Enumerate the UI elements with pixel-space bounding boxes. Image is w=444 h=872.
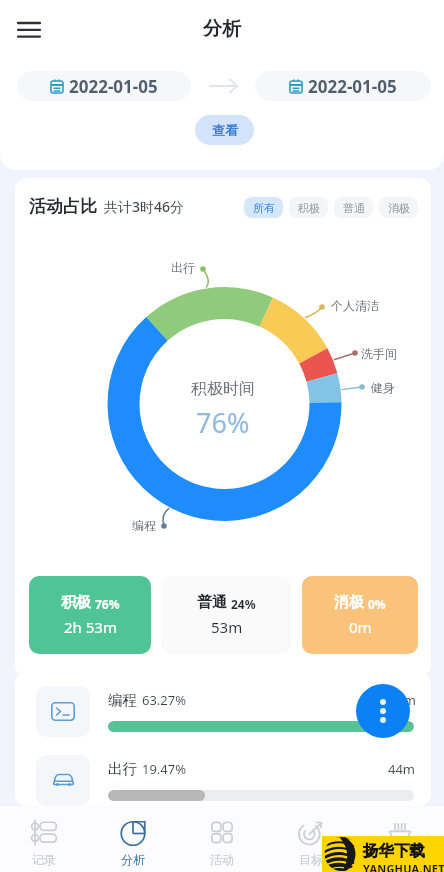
button[interactable]: 分析 — [88, 806, 177, 872]
button[interactable]: 目标 — [266, 806, 355, 872]
staticText: 目标 — [299, 852, 323, 867]
staticText: 24% — [231, 596, 256, 612]
button[interactable]: 编程 — [15, 680, 431, 746]
staticText: 19.47% — [142, 760, 187, 778]
staticText: 查看 — [212, 122, 238, 138]
staticText: 0% — [368, 596, 386, 612]
staticText: 分析 — [121, 852, 145, 867]
button[interactable]: 积极 — [289, 197, 328, 218]
staticText: 洗手间 — [361, 346, 397, 361]
staticText: 44m — [388, 760, 416, 778]
staticText: 出行 — [108, 760, 137, 778]
staticText: 编程 — [132, 518, 156, 533]
staticText: 普通 — [343, 201, 365, 215]
staticText: 记录 — [32, 852, 56, 867]
button[interactable]: 2022-01-05 — [255, 71, 431, 101]
staticText: 活动 — [210, 852, 234, 867]
staticText: 扬华下载 — [363, 841, 425, 861]
button[interactable]: 所有 — [244, 197, 283, 218]
staticText: 分析 — [203, 17, 241, 41]
staticText: 所有 — [253, 201, 275, 215]
button[interactable]: 出行 — [15, 749, 431, 806]
staticText: 活动占比 — [29, 196, 97, 217]
button[interactable]: 记录 — [0, 806, 88, 872]
button[interactable]: 查看 — [195, 115, 254, 145]
staticText: 健身 — [371, 380, 395, 395]
staticText: 共计3时46分 — [104, 197, 185, 216]
button[interactable]: 2022-01-05 — [17, 71, 191, 101]
button[interactable]: 普通 — [334, 197, 373, 218]
button[interactable]: Menu — [7, 8, 49, 50]
staticText: 76% — [196, 404, 250, 441]
staticText: 2h 23m — [370, 691, 416, 709]
button[interactable]: 我的 — [355, 806, 444, 872]
staticText: 个人清洁 — [331, 298, 379, 313]
staticText: 2h 53m — [64, 617, 117, 637]
staticText: 出行 — [171, 260, 195, 275]
staticText: 0m — [349, 617, 372, 637]
staticText: 编程 — [108, 691, 137, 709]
staticText: 我的 — [388, 852, 412, 867]
staticText: 53m — [211, 617, 243, 637]
staticText: 76% — [95, 596, 120, 612]
button[interactable]: 普通 — [161, 576, 291, 654]
staticText: 63.27% — [142, 691, 187, 709]
button[interactable]: 消极 — [379, 197, 418, 218]
staticText: 消极 — [388, 201, 410, 215]
button[interactable]: 积极 — [29, 576, 151, 654]
button[interactable]: 活动 — [177, 806, 266, 872]
staticText: 2022-01-05 — [308, 75, 397, 98]
staticText: 2022-01-05 — [69, 75, 158, 98]
button[interactable]: More options — [356, 684, 410, 738]
staticText: 积极时间 — [191, 379, 255, 399]
staticText: 普通 — [197, 593, 227, 612]
staticText: 消极 — [334, 593, 364, 612]
staticText: 积极 — [61, 593, 91, 612]
button[interactable]: 消极 — [302, 576, 418, 654]
staticText: YANGHUA.NET — [363, 861, 444, 872]
staticText: 积极 — [298, 201, 320, 215]
